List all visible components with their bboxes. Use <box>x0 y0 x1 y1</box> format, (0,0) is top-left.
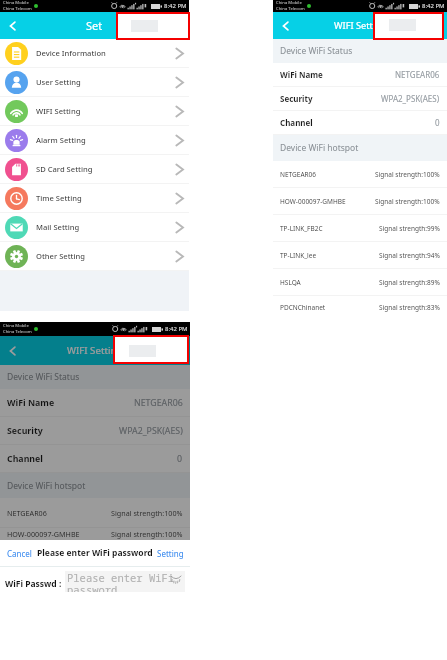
staticText: NETGEAR06 <box>7 508 47 518</box>
staticText: NETGEAR06 <box>395 69 440 80</box>
staticText: HOW-000097-GMHBE <box>7 529 80 539</box>
staticText: WIFI Setting <box>334 19 387 32</box>
staticText: HOW-000097-GMHBE <box>280 197 346 206</box>
staticText: Signal strength:89% <box>379 278 440 287</box>
button[interactable]: SD Card Setting <box>0 155 189 184</box>
button[interactable]: WiFi Name <box>0 389 190 417</box>
staticText: NETGEAR06 <box>280 170 317 179</box>
button[interactable]: Channel <box>0 445 190 473</box>
staticText: Mail Setting <box>36 222 80 232</box>
button[interactable]: HOW-000097-GMHBE <box>0 528 190 540</box>
staticText: SD Card Setting <box>36 164 93 174</box>
staticText: PDCNChinanet <box>280 303 326 312</box>
staticText: Signal strength:94% <box>379 251 440 260</box>
button[interactable]: Alarm Setting <box>0 126 189 155</box>
staticText: China Telecom <box>3 6 32 12</box>
button[interactable]: Back <box>278 18 294 34</box>
staticText: NETGEAR06 <box>134 397 183 409</box>
button[interactable]: PDCNChinanet <box>273 296 447 319</box>
button[interactable]: NETGEAR06 <box>273 161 447 188</box>
staticText: Signal strength:100% <box>111 508 183 518</box>
staticText: User Setting <box>36 77 81 87</box>
staticText: China Mobile <box>3 323 29 329</box>
button[interactable]: Time Setting <box>0 184 189 213</box>
button[interactable]: TP-LINK_lee <box>273 242 447 269</box>
staticText: China Mobile <box>3 0 29 6</box>
button[interactable]: WiFi password field <box>65 571 185 592</box>
staticText: Please enter WiFi password <box>67 571 185 592</box>
staticText: China Mobile <box>276 0 302 6</box>
button[interactable]: Mail Setting <box>0 213 189 242</box>
staticText: 0 <box>435 117 440 128</box>
staticText: Signal strength:100% <box>375 170 440 179</box>
button[interactable]: Back <box>5 343 21 359</box>
button[interactable]: Setting <box>157 548 184 559</box>
staticText: 8:42 PM <box>165 325 188 333</box>
button[interactable]: WiFi Name <box>273 63 447 87</box>
button[interactable]: Security <box>273 87 447 111</box>
button[interactable]: TP-LINK_FB2C <box>273 215 447 242</box>
staticText: Channel <box>280 117 313 128</box>
staticText: WiFi Name <box>7 397 55 409</box>
staticText: WPA2_PSK(AES) <box>381 93 440 104</box>
button[interactable]: Security <box>0 417 190 445</box>
staticText: TP-LINK_lee <box>280 251 317 260</box>
staticText: Channel <box>7 453 43 465</box>
staticText: WPA2_PSK(AES) <box>119 425 183 437</box>
staticText: Device WiFi hotspot <box>280 142 359 154</box>
button[interactable]: Cancel <box>7 548 32 559</box>
staticText: TP-LINK_FB2C <box>280 224 323 233</box>
staticText: WIFI Setting <box>67 344 123 357</box>
staticText: Device Information <box>36 48 106 58</box>
staticText: Signal strength:100% <box>111 529 183 539</box>
staticText: HSLQA <box>280 278 301 287</box>
button[interactable]: WIFI Setting <box>0 97 189 126</box>
staticText: WIFI Setting <box>36 106 81 116</box>
staticText: Time Setting <box>36 193 82 203</box>
staticText: Signal strength:100% <box>375 197 440 206</box>
button[interactable]: Channel <box>273 111 447 135</box>
button[interactable]: Other Setting <box>0 242 189 271</box>
staticText: Signal strength:99% <box>379 224 440 233</box>
staticText: China Telecom <box>3 329 32 335</box>
staticText: Alarm Setting <box>36 135 86 145</box>
staticText: China Telecom <box>276 6 305 12</box>
button[interactable]: Back <box>5 18 21 34</box>
button[interactable]: Device Information <box>0 39 189 68</box>
staticText: 8:42 PM <box>164 2 187 10</box>
staticText: Security <box>7 425 43 437</box>
staticText: Device WiFi hotspot <box>7 480 86 492</box>
staticText: WiFi Name <box>280 69 323 80</box>
staticText: 0 <box>177 453 183 465</box>
staticText: Device WiFi Status <box>7 371 80 383</box>
staticText: Security <box>280 93 313 104</box>
staticText: 8:42 PM <box>422 2 445 10</box>
staticText: Device WiFi Status <box>280 45 353 57</box>
staticText: Please enter WiFi password <box>37 547 153 559</box>
button[interactable]: HOW-000097-GMHBE <box>273 188 447 215</box>
staticText: Other Setting <box>36 251 86 261</box>
button[interactable]: User Setting <box>0 68 189 97</box>
staticText: Signal strength:83% <box>379 303 440 312</box>
button[interactable]: HSLQA <box>273 269 447 296</box>
button[interactable]: NETGEAR06 <box>0 498 190 528</box>
staticText: WiFi Passwd : <box>5 578 62 590</box>
staticText: Set <box>86 18 103 33</box>
